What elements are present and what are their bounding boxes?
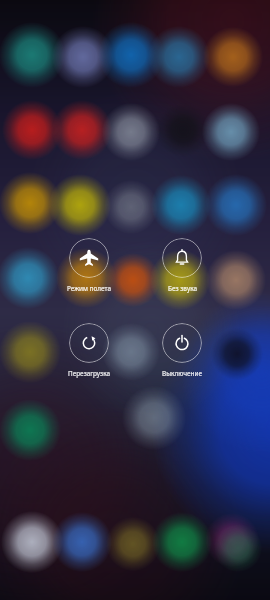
staticText: Выключение xyxy=(162,369,202,378)
button[interactable]: Без звука xyxy=(138,238,226,293)
staticText: Перезагрузка xyxy=(68,369,110,378)
staticText: Без звука xyxy=(168,284,197,293)
staticText: Режим полета xyxy=(67,284,111,293)
button[interactable]: Перезагрузка xyxy=(45,323,133,378)
button[interactable]: Выключение xyxy=(138,323,226,378)
button[interactable]: Режим полета xyxy=(45,238,133,293)
